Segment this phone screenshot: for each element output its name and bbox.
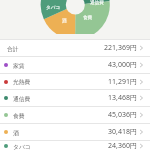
staticText: 45,036円 [108, 110, 137, 120]
button[interactable]: 通信費 [0, 90, 150, 106]
staticText: 13,468円 [108, 93, 137, 103]
staticText: 11,291円 [108, 77, 137, 87]
staticText: タバコ [46, 5, 61, 11]
staticText: 43,000円 [108, 60, 137, 70]
button[interactable]: 家賃 [0, 57, 150, 73]
staticText: 食費 [83, 15, 93, 21]
staticText: 合計 [7, 45, 19, 52]
button[interactable]: タバコ [0, 138, 150, 150]
staticText: 221,369円 [104, 43, 137, 53]
button[interactable]: 合計 [0, 40, 150, 56]
staticText: 酒 [13, 129, 19, 136]
staticText: 光熱費 [13, 78, 31, 85]
staticText: 酒 [62, 18, 67, 24]
button[interactable]: 酒 [0, 124, 150, 140]
staticText: 通信費 [90, 0, 104, 6]
staticText: 30,418円 [108, 127, 137, 137]
staticText: 24,360円 [108, 141, 137, 150]
staticText: 通信費 [13, 95, 31, 102]
staticText: 食費 [13, 112, 25, 119]
button[interactable]: 食費 [0, 107, 150, 123]
staticText: 家賃 [13, 62, 25, 69]
button[interactable]: 光熱費 [0, 74, 150, 89]
staticText: タバコ [13, 143, 31, 150]
